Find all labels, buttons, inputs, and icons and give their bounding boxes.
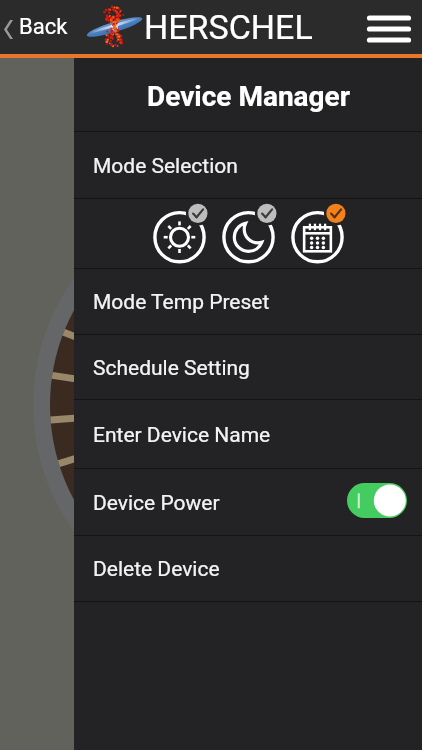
staticText: Back <box>19 14 68 40</box>
button[interactable]: Schedule mode <box>292 203 343 265</box>
staticText: Delete Device <box>93 557 220 582</box>
staticText: Mode Temp Preset <box>93 290 270 315</box>
staticText: Schedule Setting <box>93 356 250 381</box>
staticText: Device Manager <box>147 80 350 113</box>
staticText: Device Power <box>93 491 220 516</box>
button[interactable]: Enter Device Name <box>74 400 422 468</box>
staticText: HERSCHEL <box>144 7 313 47</box>
button[interactable]: Mode Temp Preset <box>74 269 422 334</box>
button[interactable]: Menu <box>356 0 422 54</box>
button[interactable]: Device Power toggle <box>347 483 407 518</box>
button[interactable]: Device Power <box>74 469 422 535</box>
button[interactable]: Delete Device <box>74 536 422 601</box>
button[interactable]: Comfort mode <box>154 203 205 265</box>
button[interactable]: Back <box>0 0 78 54</box>
staticText: Enter Device Name <box>93 423 271 448</box>
staticText: Mode Selection <box>93 154 238 179</box>
button[interactable]: Mode Selection <box>74 132 422 198</box>
button[interactable]: Setback mode <box>223 203 274 265</box>
button[interactable]: Schedule Setting <box>74 335 422 399</box>
